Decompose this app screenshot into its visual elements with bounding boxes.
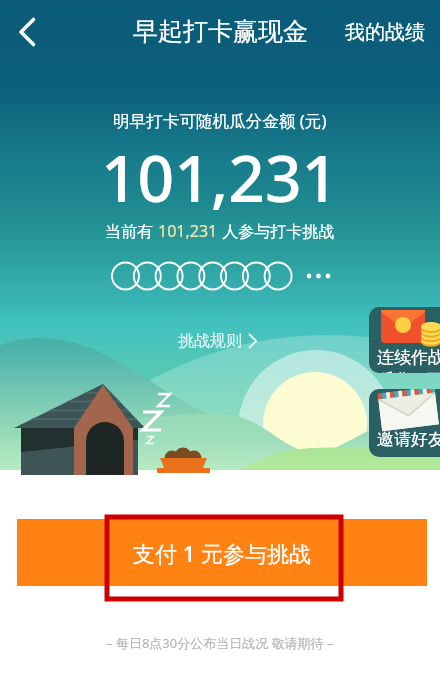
staticText: 邀请好友 (377, 429, 440, 450)
staticText: 明早打卡可随机瓜分金额 (元) (113, 109, 327, 132)
button[interactable]: 挑战规则 (168, 327, 272, 355)
staticText: 我的战绩 (345, 20, 425, 45)
staticText: 当前有 (105, 220, 158, 242)
staticText: 连续作战 (377, 347, 440, 368)
button[interactable]: 邀请好友 (369, 389, 440, 457)
button[interactable]: 支付 1 元参与挑战 (17, 519, 427, 586)
staticText: 早起打卡赢现金 (133, 16, 308, 47)
staticText: 101,231 (101, 134, 339, 221)
staticText: 人参与打卡挑战 (218, 220, 335, 242)
button[interactable]: Back (3, 8, 51, 56)
staticText: – 每日8点30分公布当日战况 敬请期待 – (106, 634, 334, 652)
button[interactable]: 连续作战 (369, 307, 440, 373)
staticText: 瓜分30万 (380, 368, 440, 373)
button[interactable]: 我的战绩 (333, 10, 440, 55)
staticText: 支付 1 元参与挑战 (133, 538, 312, 568)
staticText: 101,231 (158, 220, 218, 242)
staticText: 挑战规则 (178, 331, 242, 351)
